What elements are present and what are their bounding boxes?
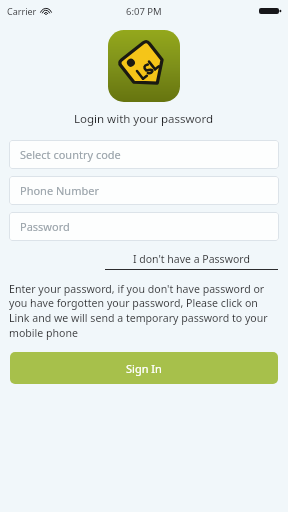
staticText: Login with your password	[74, 111, 214, 127]
staticText: 6:07 PM	[126, 5, 162, 18]
button[interactable]: Sign In	[10, 352, 278, 384]
staticText: Select country code	[20, 147, 121, 162]
staticText: I don't have a Password	[133, 252, 250, 266]
staticText: Phone Number	[20, 183, 99, 198]
staticText: Sign In	[126, 361, 162, 376]
button[interactable]: Password	[9, 212, 279, 241]
staticText: Password	[20, 219, 70, 234]
button[interactable]: I don't have a Password	[105, 252, 278, 270]
staticText: Enter your password, if you don't have p…	[9, 282, 279, 340]
button[interactable]: Phone Number	[9, 176, 279, 205]
button[interactable]: Select country code	[9, 140, 279, 169]
staticText: Carrier	[7, 5, 37, 17]
